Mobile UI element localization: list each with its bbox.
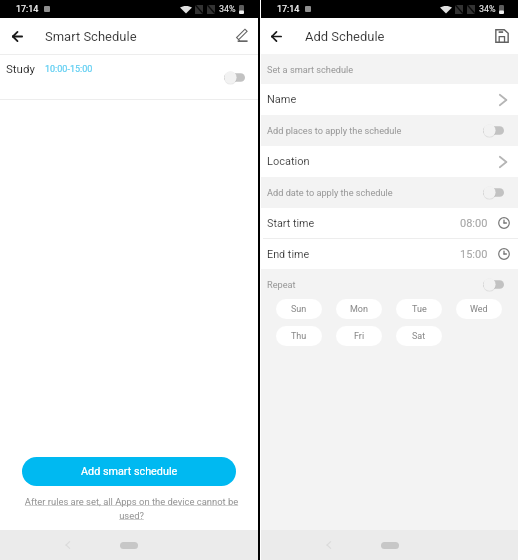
staticText: Repeat — [267, 279, 296, 290]
button[interactable]: End time — [261, 239, 518, 269]
staticText: Set a smart schedule — [267, 64, 354, 75]
staticText: Tue — [412, 304, 427, 315]
button[interactable]: Edit — [237, 30, 248, 42]
staticText: Sun — [291, 304, 307, 315]
staticText: End time — [267, 248, 310, 261]
button[interactable]: Tue — [396, 299, 442, 319]
staticText: Smart Schedule — [45, 29, 137, 44]
staticText: Fri — [354, 331, 365, 342]
staticText: Add date to apply the schedule — [267, 187, 393, 198]
button[interactable]: Thu — [276, 326, 322, 346]
button[interactable]: Add places to apply the schedule — [261, 115, 518, 146]
staticText: After rules are set, all Apps on the dev… — [24, 496, 239, 521]
button[interactable]: Sun — [276, 299, 322, 319]
button[interactable]: Study — [0, 55, 258, 99]
staticText: 08:00 — [460, 217, 488, 230]
button[interactable]: Save — [495, 29, 509, 43]
button[interactable]: Toggle — [483, 278, 504, 291]
button[interactable]: Home — [381, 542, 399, 549]
button[interactable]: Home — [120, 542, 138, 549]
staticText: Add smart schedule — [81, 465, 178, 478]
button[interactable]: Back — [12, 31, 23, 42]
button[interactable]: Start time — [261, 208, 518, 238]
staticText: Location — [267, 155, 310, 168]
staticText: Study — [6, 62, 35, 75]
button[interactable]: Name — [261, 84, 518, 115]
button[interactable]: Add date to apply the schedule — [261, 177, 518, 208]
staticText: 15:00 — [460, 248, 488, 261]
staticText: 34% — [219, 4, 236, 15]
staticText: Wed — [470, 304, 488, 315]
staticText: 34% — [479, 4, 496, 15]
button[interactable]: Toggle — [483, 186, 504, 199]
button[interactable]: Back — [61, 538, 75, 552]
button[interactable]: Location — [261, 146, 518, 177]
button[interactable]: Mon — [336, 299, 382, 319]
button[interactable]: Toggle — [483, 124, 504, 137]
button[interactable]: After rules are set, all Apps on the dev… — [24, 496, 239, 521]
button[interactable]: Repeat — [261, 269, 518, 299]
staticText: 10:00-15:00 — [45, 64, 93, 75]
staticText: Mon — [350, 304, 368, 315]
staticText: Thu — [291, 331, 307, 342]
button[interactable]: Add smart schedule — [22, 457, 236, 486]
staticText: 17:14 — [16, 4, 39, 15]
button[interactable]: Fri — [336, 326, 382, 346]
staticText: Add places to apply the schedule — [267, 125, 402, 136]
staticText: Start time — [267, 217, 315, 230]
button[interactable]: Toggle — [224, 71, 245, 84]
button[interactable]: Wed — [456, 299, 502, 319]
staticText: Add Schedule — [305, 29, 385, 44]
staticText: Sat — [412, 331, 426, 342]
button[interactable]: Sat — [396, 326, 442, 346]
button[interactable]: Back — [322, 538, 336, 552]
button[interactable]: Back — [271, 31, 282, 42]
staticText: 17:14 — [277, 4, 300, 15]
staticText: Name — [267, 93, 297, 106]
